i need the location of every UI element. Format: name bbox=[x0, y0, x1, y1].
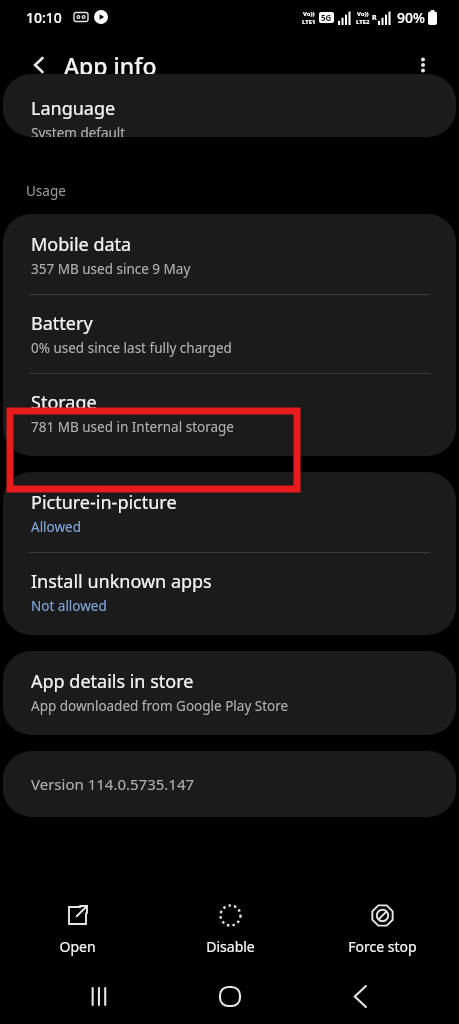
button[interactable]: Storage bbox=[3, 374, 456, 456]
button[interactable]: Disable bbox=[155, 897, 305, 962]
staticText: Storage bbox=[31, 390, 97, 415]
staticText: LTE1 bbox=[302, 18, 316, 26]
button[interactable]: Language bbox=[3, 74, 456, 137]
staticText: App info bbox=[64, 50, 157, 81]
staticText: Vo)) bbox=[357, 10, 369, 18]
button[interactable]: Recents bbox=[67, 968, 131, 1024]
button[interactable]: Mobile data bbox=[3, 214, 456, 294]
staticText: 0% used since last fully charged bbox=[31, 339, 232, 357]
staticText: Usage bbox=[26, 182, 66, 200]
staticText: 10:10 bbox=[26, 8, 62, 27]
staticText: Mobile data bbox=[31, 232, 132, 257]
staticText: System default bbox=[31, 124, 126, 137]
button[interactable]: More options bbox=[401, 43, 445, 87]
button[interactable]: Version 114.0.5735.147 bbox=[3, 751, 456, 817]
staticText: Open bbox=[59, 937, 96, 956]
staticText: Picture-in-picture bbox=[31, 490, 177, 515]
button[interactable]: Back bbox=[18, 44, 60, 86]
button[interactable]: App details in store bbox=[3, 651, 456, 735]
staticText: 5G bbox=[321, 12, 332, 23]
staticText: App downloaded from Google Play Store bbox=[31, 697, 289, 715]
button[interactable]: Back bbox=[328, 968, 392, 1024]
staticText: R bbox=[372, 13, 377, 23]
button[interactable]: Picture-in-picture bbox=[3, 472, 456, 552]
staticText: Install unknown apps bbox=[31, 569, 212, 594]
button[interactable]: Battery bbox=[3, 295, 456, 373]
staticText: Disable bbox=[206, 937, 255, 956]
button[interactable]: Force stop bbox=[307, 897, 457, 962]
button[interactable]: Install unknown apps bbox=[3, 553, 456, 635]
staticText: App details in store bbox=[31, 669, 194, 694]
button[interactable]: Open bbox=[2, 897, 152, 962]
staticText: Allowed bbox=[31, 518, 82, 536]
staticText: LTE2 bbox=[356, 18, 370, 26]
staticText: Battery bbox=[31, 311, 93, 336]
staticText: Vo)) bbox=[303, 10, 315, 18]
staticText: 90% bbox=[397, 8, 425, 27]
staticText: Language bbox=[31, 96, 116, 121]
staticText: Version 114.0.5735.147 bbox=[31, 774, 195, 794]
staticText: 357 MB used since 9 May bbox=[31, 260, 191, 278]
button[interactable]: Home bbox=[198, 968, 262, 1024]
staticText: Not allowed bbox=[31, 597, 107, 615]
staticText: Force stop bbox=[348, 937, 417, 956]
staticText: 781 MB used in Internal storage bbox=[31, 418, 234, 436]
